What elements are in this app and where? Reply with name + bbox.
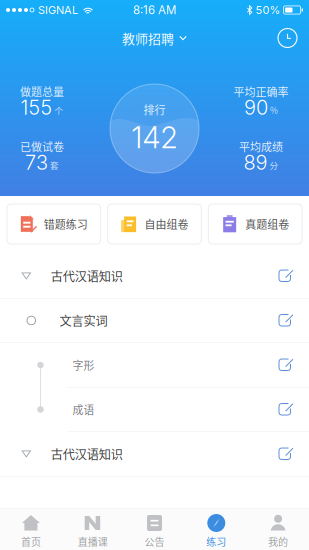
button[interactable]: 直播课 <box>62 508 124 550</box>
button[interactable]: 公告 <box>124 508 185 550</box>
button[interactable]: 练习 <box>185 508 247 550</box>
staticText: 套 <box>50 160 59 170</box>
staticText: 首页 <box>21 535 41 547</box>
staticText: 成语 <box>73 403 95 416</box>
button[interactable]: 首页 <box>0 508 62 550</box>
staticText: 教师招聘 <box>122 30 174 46</box>
button[interactable]: History <box>272 22 303 53</box>
staticText: % <box>270 105 278 115</box>
staticText: 我的 <box>268 535 288 547</box>
staticText: 直播课 <box>78 535 108 547</box>
staticText: 平均成绩 <box>239 140 283 153</box>
staticText: 自由组卷 <box>144 218 188 230</box>
staticText: 155 <box>20 98 52 117</box>
button[interactable]: 字形 <box>0 343 309 387</box>
staticText: 90 <box>244 98 268 117</box>
staticText: 个 <box>54 105 63 115</box>
staticText: 142 <box>131 124 177 152</box>
staticText: 文言实词 <box>59 313 107 327</box>
button[interactable]: 教师招聘 <box>114 25 195 51</box>
staticText: SIGNAL <box>38 5 78 15</box>
button[interactable]: 真题组卷 <box>208 204 302 244</box>
button[interactable]: 文言实词 <box>0 298 309 343</box>
button[interactable]: 古代汉语知识 <box>0 254 309 298</box>
staticText: 做题总量 <box>20 85 64 98</box>
button[interactable]: 成语 <box>0 387 309 432</box>
button[interactable]: 自由组卷 <box>108 204 201 244</box>
staticText: 练习 <box>206 535 226 547</box>
staticText: 89 <box>243 153 267 172</box>
button[interactable]: 古代汉语知识 <box>0 432 309 476</box>
staticText: 古代汉语知识 <box>51 269 123 283</box>
button[interactable]: 错题练习 <box>7 204 101 244</box>
staticText: 排行 <box>143 103 165 116</box>
staticText: 平均正确率 <box>233 85 288 98</box>
button[interactable]: 我的 <box>247 508 309 550</box>
staticText: 分 <box>269 160 278 170</box>
staticText: 已做试卷 <box>20 140 64 153</box>
staticText: 错题练习 <box>44 218 88 230</box>
staticText: 8:16 AM <box>133 4 176 15</box>
staticText: 73 <box>25 153 48 172</box>
staticText: 公告 <box>144 535 164 547</box>
staticText: 50% <box>256 5 281 15</box>
staticText: 真题组卷 <box>245 218 289 230</box>
staticText: 字形 <box>73 359 95 371</box>
staticText: 古代汉语知识 <box>51 447 123 461</box>
